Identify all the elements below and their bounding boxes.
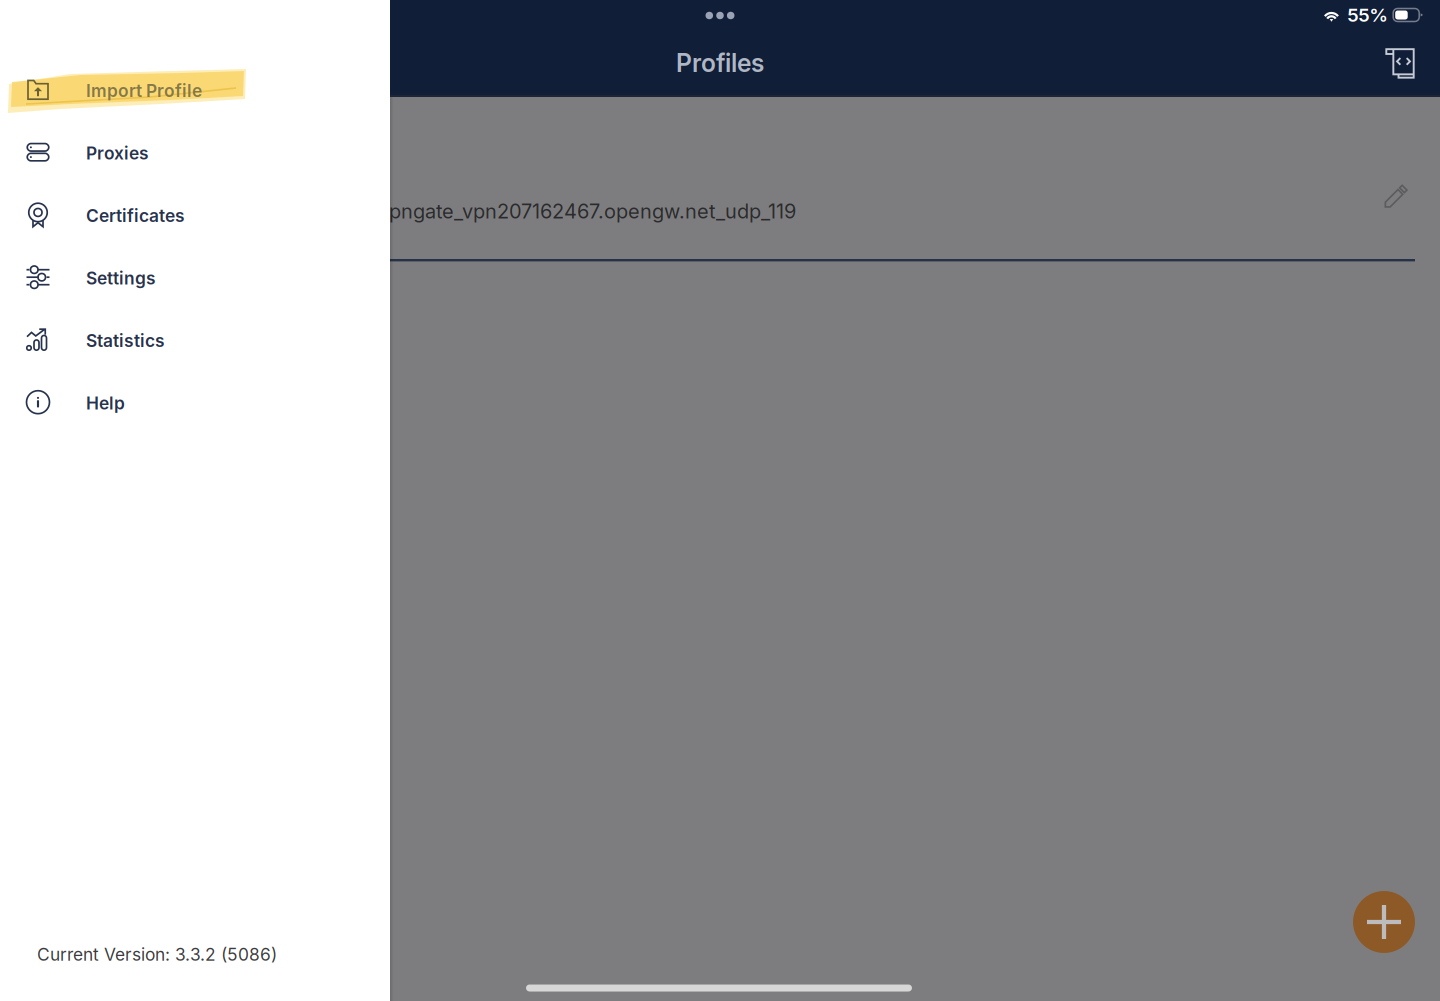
staticText: Settings [86,268,156,289]
button[interactable]: Add profile [1353,891,1415,953]
staticText: Statistics [86,330,165,351]
button[interactable]: Certificates [0,184,390,246]
staticText: 55% [1347,4,1388,26]
staticText: Help [86,393,125,414]
button[interactable]: vpngate_vpn207162467.opengw.net_udp_119 [0,145,1355,261]
button[interactable]: Statistics [0,309,390,371]
staticText: Certificates [86,205,185,226]
button[interactable]: Settings [0,246,390,309]
button[interactable]: Proxies [0,121,390,184]
button[interactable]: Edit profile [1373,173,1419,219]
staticText: Profiles [676,48,764,78]
button[interactable]: Import Profile [0,59,390,121]
staticText: Import Profile [86,80,202,101]
staticText: vpngate_vpn207162467.opengw.net_udp_119 [378,199,796,223]
button[interactable]: Edit configuration [1377,40,1423,86]
button[interactable]: Help [0,371,390,434]
staticText: Current Version: 3.3.2 (5086) [37,944,277,965]
staticText: Proxies [86,143,149,164]
